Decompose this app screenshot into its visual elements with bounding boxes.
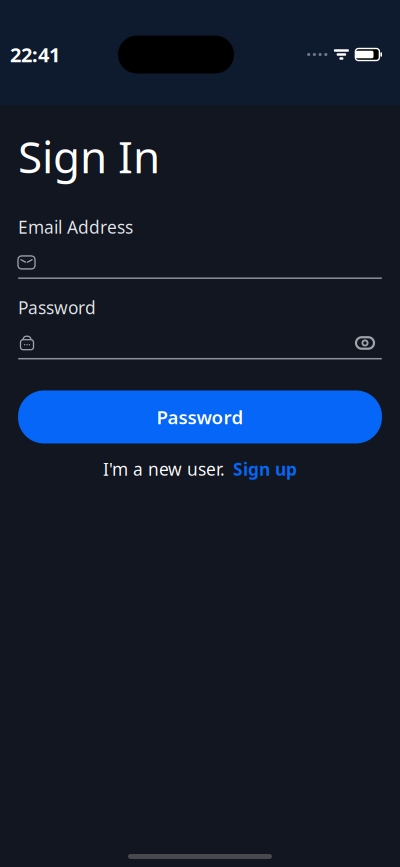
staticText: 22:41 (10, 41, 60, 68)
staticText: Password (156, 405, 243, 429)
button[interactable]: Sign up (233, 457, 297, 480)
staticText: Password (18, 296, 96, 319)
staticText: Sign In (18, 127, 160, 185)
staticText: I'm a new user. (103, 457, 225, 480)
staticText: Email Address (18, 215, 133, 238)
button[interactable]: Show password (348, 328, 382, 358)
button[interactable]: Password (18, 390, 382, 443)
staticText: Sign up (233, 457, 297, 480)
